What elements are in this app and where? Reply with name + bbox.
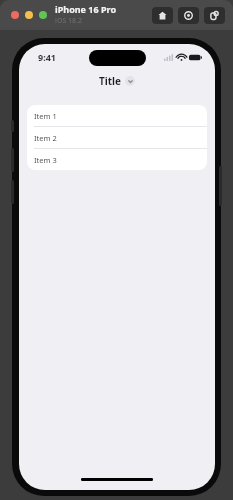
button[interactable]: Record screen (178, 7, 199, 24)
button[interactable]: Item 3 (27, 149, 207, 170)
button[interactable]: Minimize (25, 11, 33, 19)
staticText: iPhone 16 Pro (55, 3, 117, 15)
staticText: Item 2 (34, 133, 57, 143)
button[interactable]: Home (152, 7, 173, 24)
button[interactable]: Rotate device (204, 7, 225, 24)
staticText: iOS 18.2 (55, 16, 82, 26)
staticText: Item 3 (34, 155, 57, 165)
staticText: 9:41 (38, 51, 56, 63)
button[interactable]: Title (96, 73, 138, 89)
button[interactable]: Close (11, 11, 19, 19)
button[interactable]: Zoom (39, 11, 47, 19)
staticText: Item 1 (34, 111, 57, 121)
button[interactable]: Item 2 (27, 127, 207, 148)
staticText: Title (99, 74, 122, 88)
button[interactable]: Item 1 (27, 105, 207, 126)
